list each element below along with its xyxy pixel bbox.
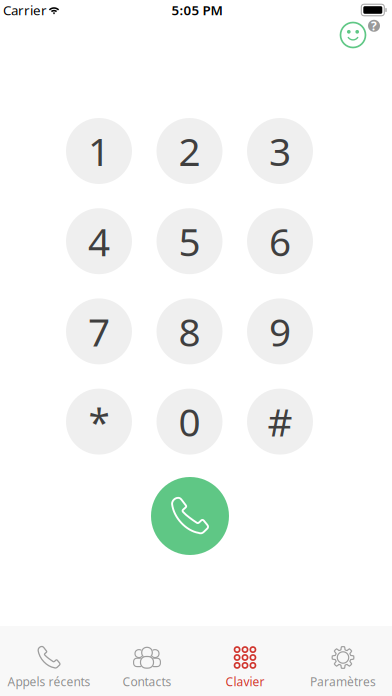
staticText: ? xyxy=(371,18,377,34)
button[interactable]: 6 xyxy=(247,208,313,274)
button[interactable]: # xyxy=(247,389,313,455)
button[interactable]: 7 xyxy=(66,298,132,364)
staticText: Contacts xyxy=(122,674,171,689)
staticText: 2 xyxy=(178,125,200,177)
button[interactable]: 8 xyxy=(156,298,222,364)
button[interactable]: 4 xyxy=(66,208,132,274)
staticText: 7 xyxy=(88,306,110,357)
button[interactable]: Clavier xyxy=(196,626,294,696)
button[interactable]: Help xyxy=(339,15,383,55)
staticText: 6 xyxy=(269,215,291,267)
button[interactable]: Paramètres xyxy=(294,626,392,696)
staticText: 5:05 PM xyxy=(171,1,222,19)
staticText: 5 xyxy=(178,215,200,267)
staticText: * xyxy=(88,396,109,447)
staticText: Paramètres xyxy=(310,674,376,689)
staticText: Carrier xyxy=(3,1,47,19)
staticText: 3 xyxy=(269,125,291,177)
button[interactable]: 9 xyxy=(247,298,313,364)
staticText: Clavier xyxy=(225,674,264,689)
staticText: Appels récents xyxy=(7,674,90,689)
button[interactable]: 5 xyxy=(156,208,222,274)
staticText: 0 xyxy=(178,396,200,447)
button[interactable]: * xyxy=(66,389,132,455)
staticText: # xyxy=(267,396,292,447)
staticText: 8 xyxy=(178,306,200,357)
staticText: 9 xyxy=(269,306,291,357)
button[interactable]: Appels récents xyxy=(0,626,98,696)
staticText: 4 xyxy=(88,215,110,267)
button[interactable]: Contacts xyxy=(98,626,196,696)
button[interactable]: 2 xyxy=(156,118,222,184)
button[interactable]: 1 xyxy=(66,118,132,184)
staticText: 1 xyxy=(88,125,110,177)
button[interactable]: 0 xyxy=(156,389,222,455)
button[interactable]: Call xyxy=(151,477,229,555)
button[interactable]: 3 xyxy=(247,118,313,184)
